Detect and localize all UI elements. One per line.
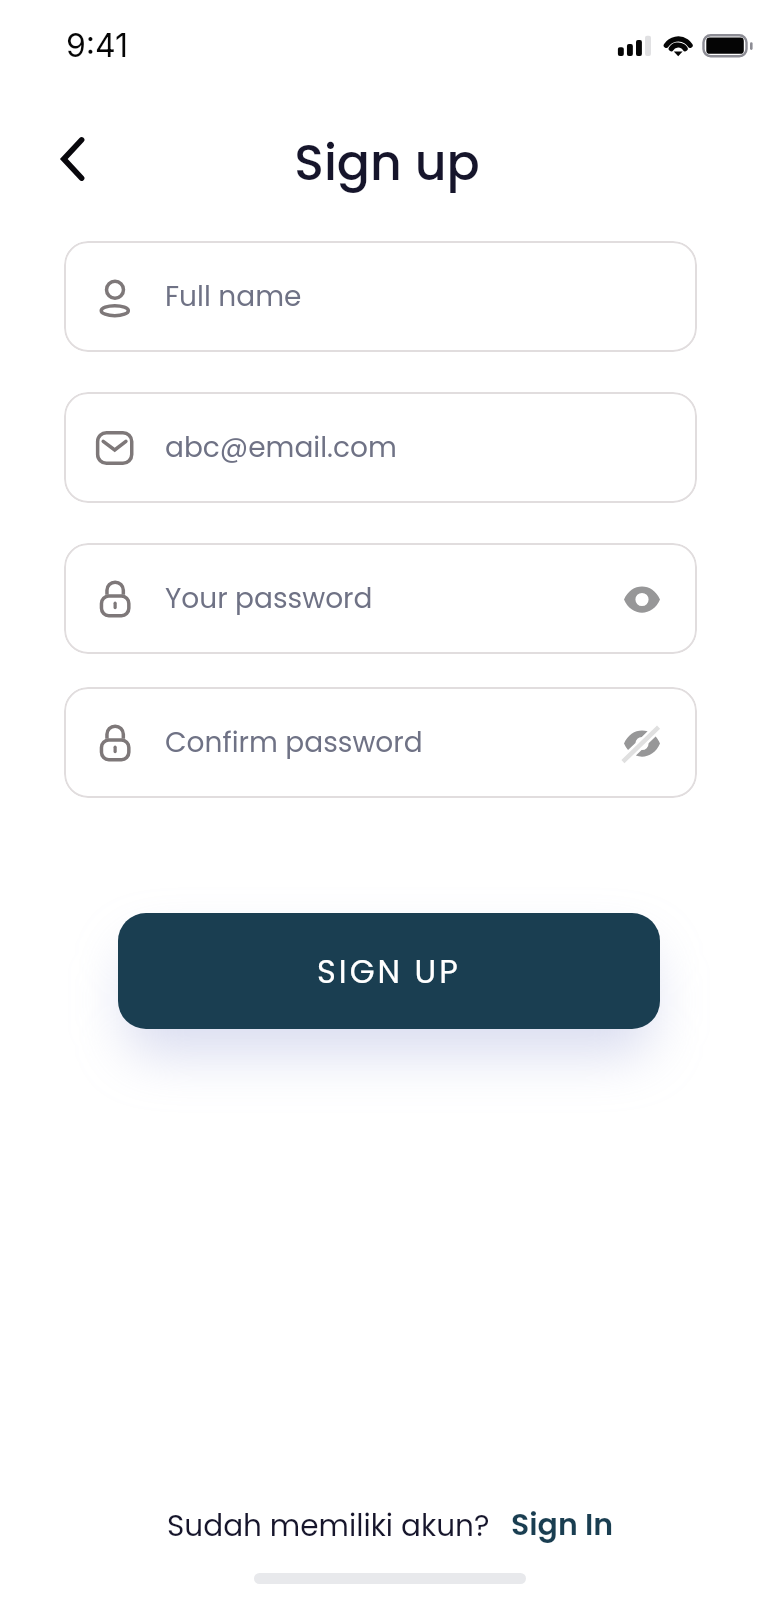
staticText: Your password: [165, 579, 373, 618]
staticText: 9:41: [66, 26, 129, 65]
staticText: Confirm password: [165, 723, 423, 762]
button[interactable]: Show password: [613, 570, 671, 628]
staticText: Sudah memiliki akun?: [167, 1505, 490, 1546]
staticText: Sign up: [0, 129, 777, 198]
staticText: Sign In: [511, 1504, 614, 1546]
button[interactable]: Confirm password: [64, 687, 697, 798]
button[interactable]: SIGN UP: [118, 913, 660, 1029]
staticText: SIGN UP: [317, 949, 461, 994]
button[interactable]: Full name: [64, 241, 697, 352]
staticText: abc@email.com: [165, 428, 397, 467]
staticText: Full name: [165, 277, 302, 316]
button[interactable]: Hide password: [613, 714, 671, 772]
button[interactable]: Your password: [64, 543, 697, 654]
button[interactable]: abc@email.com: [64, 392, 697, 503]
button[interactable]: Sudah memiliki akun?: [167, 1504, 614, 1546]
button[interactable]: Back: [42, 126, 108, 192]
